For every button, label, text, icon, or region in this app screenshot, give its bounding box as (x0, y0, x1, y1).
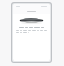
button[interactable]: Product image (18, 17, 45, 24)
